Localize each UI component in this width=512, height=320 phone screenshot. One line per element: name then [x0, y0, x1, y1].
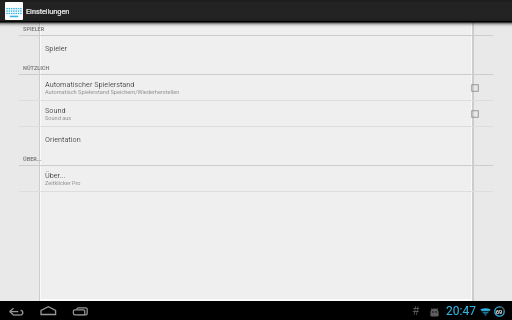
- staticText: SPIELER: [23, 26, 45, 32]
- staticText: Automatisch Spielerstand Speichern/Wiede…: [45, 89, 180, 96]
- staticText: 69: [496, 309, 503, 315]
- staticText: ÜBER...: [23, 156, 42, 162]
- button[interactable]: Sound: [0, 101, 512, 127]
- staticText: NÜTZLICH: [23, 65, 50, 71]
- button[interactable]: Automatischer Spielerstand: [0, 75, 512, 101]
- staticText: Sound: [45, 106, 66, 114]
- staticText: Über...: [45, 171, 66, 179]
- staticText: 20:47: [446, 304, 476, 318]
- staticText: Einstellungen: [26, 7, 70, 15]
- staticText: Orientation: [45, 135, 81, 143]
- button[interactable]: Über...: [0, 166, 512, 192]
- button[interactable]: Back: [6, 301, 27, 320]
- staticText: Spieler: [45, 44, 68, 52]
- button[interactable]: Spieler: [0, 36, 512, 62]
- button[interactable]: Home: [38, 301, 58, 320]
- staticText: Zeitklicker Pro: [45, 180, 81, 187]
- staticText: Automatischer Spielerstand: [45, 80, 135, 88]
- staticText: Sound aus: [45, 115, 72, 122]
- button[interactable]: Recent apps: [70, 301, 90, 320]
- button[interactable]: Orientation: [0, 127, 512, 153]
- button[interactable]: App icon: [5, 2, 23, 20]
- staticText: #: [412, 304, 420, 318]
